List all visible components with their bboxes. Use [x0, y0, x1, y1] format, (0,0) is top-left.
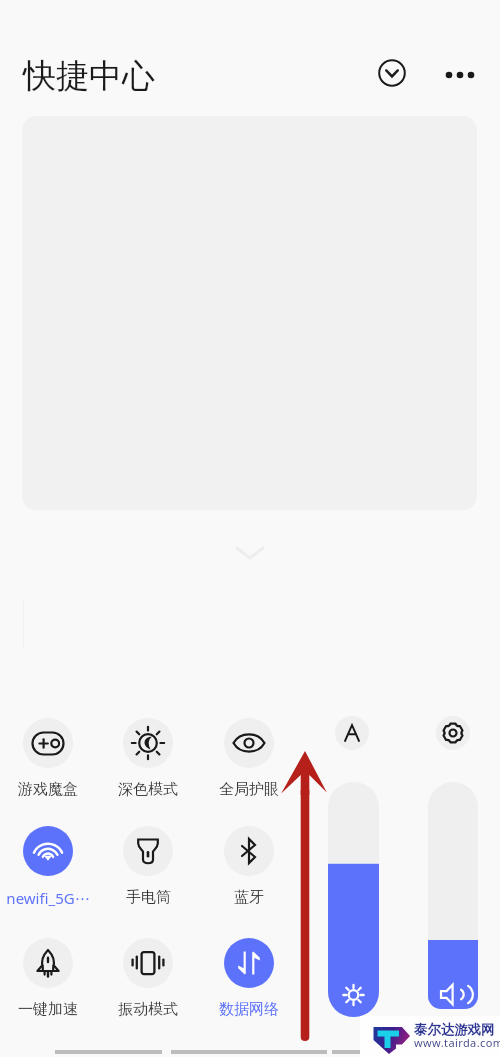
staticText: www.tairda.com [414, 1035, 500, 1050]
staticText: 振动模式 [118, 1000, 178, 1019]
staticText: 数据网络 [219, 1000, 279, 1019]
staticText: 游戏魔盒 [18, 780, 78, 799]
staticText: newifi_5G⋯ [6, 888, 90, 908]
staticText: 泰尔达游戏网 [414, 1021, 495, 1038]
button[interactable]: 深色模式 [98, 718, 198, 799]
staticText: 全局护眼 [219, 780, 279, 799]
staticText: 快捷中心 [23, 55, 155, 97]
button[interactable]: Brightness [328, 782, 379, 1017]
button[interactable]: Settings [436, 716, 470, 750]
button[interactable]: 一键加速 [0, 938, 98, 1019]
button[interactable]: Auto brightness [335, 716, 369, 750]
button[interactable]: 游戏魔盒 [0, 718, 98, 799]
staticText: 一键加速 [18, 1000, 78, 1019]
button[interactable]: newifi_5G⋯ [0, 826, 98, 908]
staticText: 手电筒 [126, 888, 171, 907]
button[interactable]: 振动模式 [98, 938, 198, 1019]
button[interactable]: 数据网络 [199, 938, 299, 1019]
button[interactable]: 蓝牙 [199, 826, 299, 907]
staticText: 深色模式 [118, 780, 178, 799]
button[interactable]: More options [438, 53, 482, 97]
button[interactable]: Expand [370, 51, 414, 95]
button[interactable]: Volume [428, 782, 478, 1009]
button[interactable]: 手电筒 [98, 826, 198, 907]
button[interactable]: 全局护眼 [199, 718, 299, 799]
staticText: 蓝牙 [234, 888, 264, 907]
